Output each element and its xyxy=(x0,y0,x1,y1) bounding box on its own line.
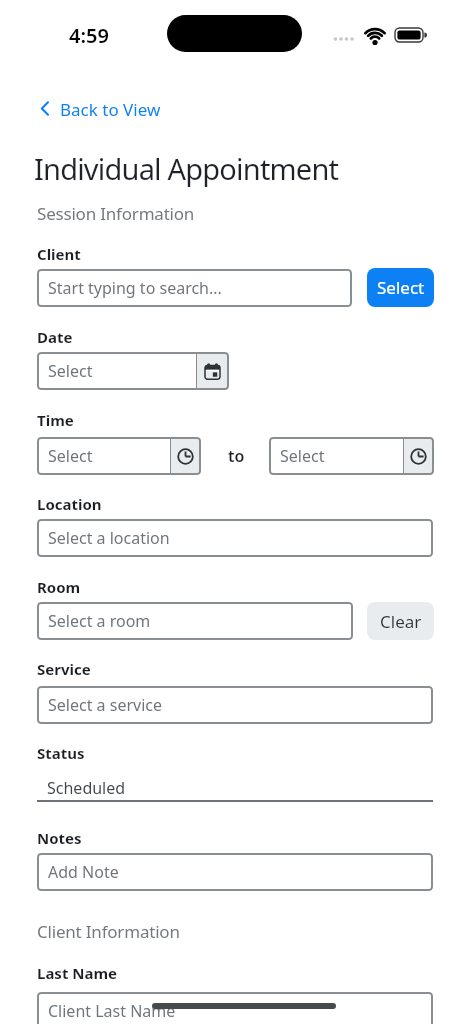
button[interactable]: Start typing to search... xyxy=(37,269,352,307)
staticText: Add Note xyxy=(48,861,119,883)
staticText: to xyxy=(228,445,245,467)
staticText: Notes xyxy=(37,828,82,844)
staticText: Select xyxy=(48,445,93,467)
button[interactable]: Client Last Name xyxy=(37,992,433,1024)
staticText: Client xyxy=(37,244,81,260)
staticText: Last Name xyxy=(37,963,118,979)
staticText: Time xyxy=(37,410,74,426)
button[interactable]: Select a location xyxy=(37,519,433,557)
button[interactable]: Select xyxy=(269,437,434,475)
button[interactable]: Back to View xyxy=(40,98,161,118)
button[interactable]: Select xyxy=(37,352,229,390)
staticText: Service xyxy=(37,659,91,675)
staticText: Status xyxy=(37,743,85,759)
staticText: Clear xyxy=(380,610,422,633)
button[interactable]: Select a service xyxy=(37,686,433,724)
staticText: Select a service xyxy=(48,694,162,716)
staticText: Session Information xyxy=(37,202,195,222)
staticText: Date xyxy=(37,327,73,343)
staticText: Select xyxy=(377,276,425,299)
staticText: Client Information xyxy=(37,920,180,940)
staticText: Scheduled xyxy=(47,777,126,795)
staticText: Location xyxy=(37,494,102,510)
button[interactable]: Clear xyxy=(367,602,434,640)
staticText: Start typing to search... xyxy=(48,277,222,299)
staticText: 4:59 xyxy=(69,22,109,48)
staticText: Back to View xyxy=(60,98,161,118)
staticText: Individual Appointment xyxy=(34,149,339,188)
staticText: Select a room xyxy=(48,610,151,632)
button[interactable]: Add Note xyxy=(37,853,433,891)
staticText: Select xyxy=(280,445,325,467)
button[interactable]: Select a room xyxy=(37,602,353,640)
staticText: Room xyxy=(37,577,81,593)
staticText: Select a location xyxy=(48,527,170,549)
staticText: Client Last Name xyxy=(48,1000,176,1022)
button[interactable]: Select xyxy=(367,268,434,307)
button[interactable]: Select xyxy=(37,437,201,475)
staticText: Select xyxy=(48,360,93,382)
